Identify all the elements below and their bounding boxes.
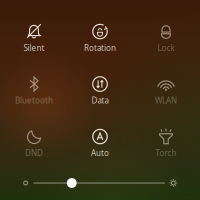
button[interactable]: Bluetooth <box>1 64 67 116</box>
staticText: Bluetooth <box>15 95 53 106</box>
button[interactable]: Torch <box>133 116 199 169</box>
button[interactable]: Rotation <box>67 11 133 64</box>
button[interactable]: Silent <box>1 11 67 64</box>
button[interactable]: Lock <box>133 11 199 64</box>
staticText: Torch <box>155 148 176 158</box>
staticText: DND <box>25 148 43 158</box>
button[interactable]: Brightness <box>22 177 178 189</box>
staticText: Rotation <box>84 43 116 53</box>
button[interactable]: WLAN <box>133 64 199 116</box>
staticText: Auto <box>91 148 109 158</box>
staticText: Silent <box>23 43 44 53</box>
staticText: WLAN <box>155 95 177 106</box>
staticText: Data <box>91 95 108 106</box>
button[interactable]: DND <box>1 116 67 169</box>
button[interactable]: Auto <box>67 116 133 169</box>
staticText: Lock <box>157 43 174 53</box>
button[interactable]: Data <box>67 64 133 116</box>
